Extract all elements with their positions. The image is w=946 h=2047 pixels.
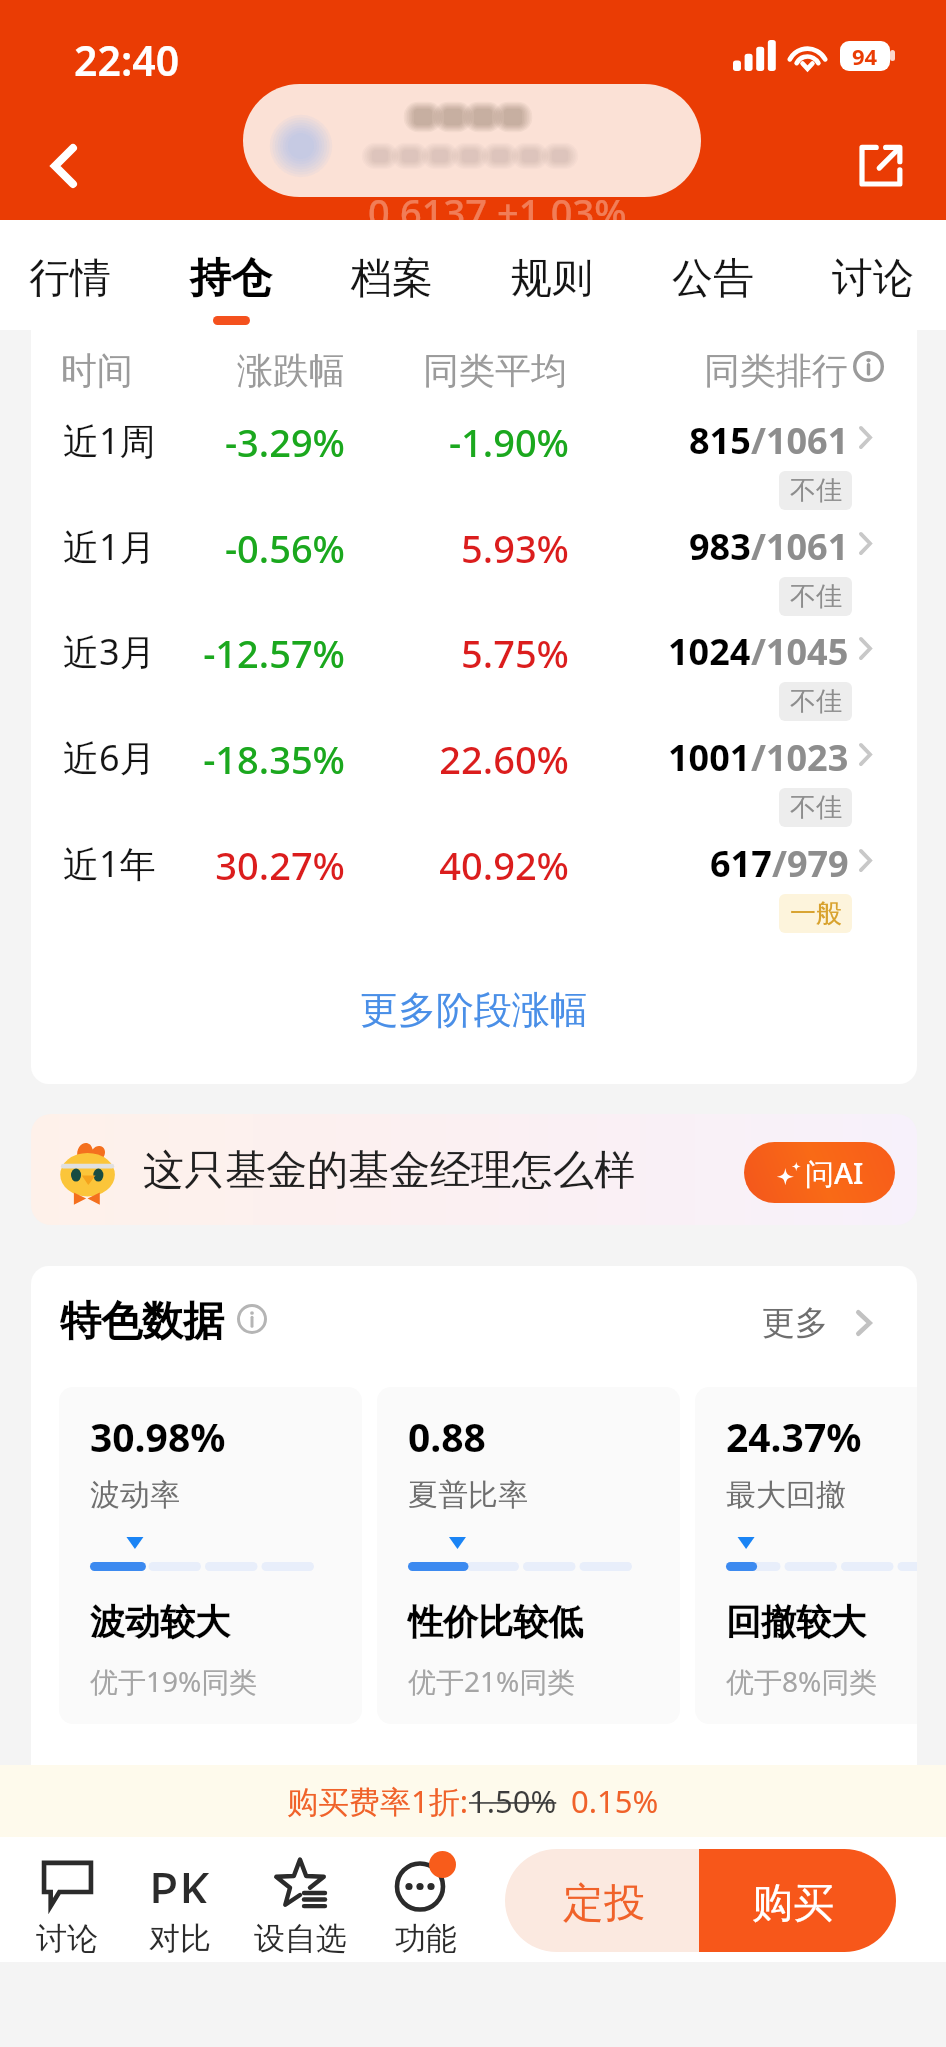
staticText: 这只基金的基金经理怎么样 <box>143 1145 635 1197</box>
staticText: -1.90% <box>331 416 569 468</box>
staticText: 22:40 <box>74 32 180 88</box>
staticText: 回撤较大 <box>726 1600 866 1644</box>
staticText: 不佳 <box>790 791 842 824</box>
staticText: 对比 <box>149 1919 211 1958</box>
button[interactable]: 购买 <box>699 1849 896 1952</box>
staticText: 优于21%同类 <box>408 1662 576 1700</box>
staticText: 近3月 <box>63 627 156 676</box>
staticText: 定投 <box>563 1878 645 1930</box>
staticText: 优于19%同类 <box>90 1662 258 1700</box>
button[interactable]: Share <box>844 130 916 202</box>
button[interactable]: Add to watchlist <box>242 1837 358 1962</box>
button[interactable]: 更多 <box>762 1295 872 1351</box>
staticText: 24.37% <box>726 1410 862 1463</box>
staticText: 0.6137 +1.03% <box>368 186 627 238</box>
staticText: 特色数据 <box>60 1296 224 1348</box>
staticText: -18.35% <box>131 733 345 785</box>
staticText: 近6月 <box>63 733 156 782</box>
staticText: 不佳 <box>790 474 842 507</box>
staticText: /979 <box>772 839 849 888</box>
staticText: 5.93% <box>331 522 569 574</box>
staticText: 1001 <box>668 733 751 782</box>
staticText: 一般 <box>790 897 842 930</box>
staticText: 讨论 <box>36 1919 98 1958</box>
button[interactable]: Features <box>368 1837 484 1962</box>
staticText: 40.92% <box>331 839 569 891</box>
staticText: 购买 <box>752 1878 834 1930</box>
staticText: 更多阶段涨幅 <box>360 986 588 1034</box>
staticText: 讨论 <box>832 253 914 305</box>
staticText: 30.27% <box>131 839 345 891</box>
staticText: -3.29% <box>131 416 345 468</box>
staticText: 公告 <box>672 253 754 305</box>
staticText: 夏普比率 <box>408 1476 528 1514</box>
staticText: 行情 <box>29 253 111 305</box>
button[interactable]: 定投 <box>505 1849 699 1952</box>
staticText: /1061 <box>751 522 849 571</box>
staticText: 持仓 <box>190 253 272 305</box>
staticText: 不佳 <box>790 580 842 613</box>
staticText: /1045 <box>751 627 849 676</box>
button[interactable]: 持仓 <box>151 220 311 330</box>
staticText: 5.75% <box>331 627 569 679</box>
staticText: 档案 <box>351 253 433 305</box>
staticText: 不佳 <box>790 685 842 718</box>
staticText: /1061 <box>751 416 849 465</box>
staticText: 购买费率1折: <box>287 1780 469 1822</box>
staticText: 1.50% <box>469 1780 557 1822</box>
staticText: 波动率 <box>90 1476 180 1514</box>
staticText: 优于8%同类 <box>726 1662 878 1700</box>
staticText: 问AI <box>805 1153 864 1193</box>
staticText: 最大回撤 <box>726 1476 846 1514</box>
staticText: 规则 <box>511 253 593 305</box>
staticText: 30.98% <box>90 1410 226 1463</box>
staticText: -12.57% <box>131 627 345 679</box>
button[interactable]: 档案 <box>312 220 472 330</box>
staticText: 1024 <box>668 627 751 676</box>
staticText: 同类平均 <box>331 348 567 393</box>
button[interactable]: 讨论 <box>793 220 946 330</box>
staticText: 22.60% <box>331 733 569 785</box>
button[interactable]: Back <box>28 130 100 202</box>
staticText: 设自选 <box>254 1919 347 1958</box>
staticText: 0.88 <box>408 1410 486 1463</box>
button[interactable]: 规则 <box>472 220 632 330</box>
button[interactable]: 行情 <box>0 220 150 330</box>
staticText: 时间 <box>61 348 133 393</box>
staticText: 近1月 <box>63 522 156 571</box>
staticText: PK <box>149 1856 211 1903</box>
staticText: 近1年 <box>63 839 156 888</box>
staticText: 波动较大 <box>90 1600 230 1644</box>
button[interactable]: 公告 <box>633 220 793 330</box>
staticText: 近1周 <box>63 416 156 465</box>
staticText: 815 <box>689 416 751 465</box>
staticText: 性价比较低 <box>408 1600 583 1644</box>
staticText: 同类排行 <box>704 348 848 393</box>
button[interactable]: Compare <box>122 1837 238 1962</box>
staticText: 94 <box>852 41 878 71</box>
staticText: 更多 <box>762 1302 828 1344</box>
staticText: 983 <box>689 522 751 571</box>
staticText: /1023 <box>751 733 849 782</box>
staticText: 涨跌幅 <box>131 348 345 393</box>
button[interactable]: 更多阶段涨幅 <box>321 978 627 1042</box>
button[interactable]: Discussion <box>9 1837 125 1962</box>
staticText: -0.56% <box>131 522 345 574</box>
staticText: 0.15% <box>571 1780 659 1822</box>
button[interactable]: 这只基金的基金经理怎么样 <box>31 1114 917 1225</box>
staticText: 功能 <box>395 1919 457 1958</box>
staticText: 617 <box>710 839 772 888</box>
